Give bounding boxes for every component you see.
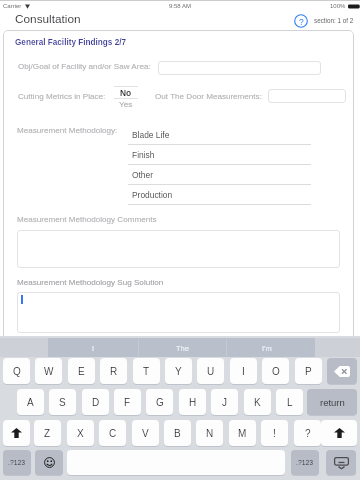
staticText: H — [189, 397, 197, 408]
staticText: Measurement Methodology Sug Solution — [17, 278, 164, 287]
button[interactable]: Other — [128, 165, 311, 185]
staticText: 9:58 AM — [169, 3, 192, 10]
button[interactable]: Help — [294, 14, 308, 28]
staticText: V — [142, 428, 149, 439]
staticText: Yes — [119, 100, 133, 109]
button[interactable]: The — [138, 338, 226, 357]
button[interactable]: R — [100, 358, 127, 384]
button[interactable]: Q — [3, 358, 30, 384]
staticText: Out The Door Measurements: — [155, 92, 262, 101]
button[interactable]: E — [68, 358, 95, 384]
button[interactable]: J — [211, 389, 238, 415]
staticText: G — [156, 397, 164, 408]
button[interactable]: Z — [34, 420, 61, 446]
button[interactable]: P — [295, 358, 322, 384]
button[interactable]: ? — [294, 420, 321, 446]
button[interactable]: Emoji — [35, 450, 63, 475]
button[interactable]: Shift — [3, 420, 30, 446]
staticText: Q — [13, 366, 21, 377]
staticText: U — [207, 366, 215, 377]
staticText: Cutting Metrics in Place: — [18, 92, 106, 101]
staticText: K — [254, 397, 261, 408]
button[interactable]: ! — [261, 420, 288, 446]
staticText: .?123 — [296, 459, 314, 467]
staticText: 100% — [330, 3, 346, 10]
staticText: I'm — [262, 344, 272, 352]
button[interactable]: No — [114, 86, 138, 108]
staticText: A — [27, 397, 34, 408]
button[interactable]: return — [307, 389, 357, 415]
button[interactable]: F — [114, 389, 141, 415]
staticText: D — [92, 397, 100, 408]
staticText: S — [59, 397, 66, 408]
button[interactable]: Production — [128, 185, 311, 205]
button[interactable]: A — [17, 389, 44, 415]
staticText: Y — [175, 366, 182, 377]
button[interactable]: H — [179, 389, 206, 415]
button[interactable]: W — [35, 358, 62, 384]
button[interactable]: S — [49, 389, 76, 415]
staticText: Obj/Goal of Facility and/or Saw Area: — [18, 62, 151, 71]
staticText: No — [120, 88, 132, 97]
staticText: Consultation — [15, 12, 81, 25]
button[interactable]: Hide keyboard — [326, 450, 356, 475]
staticText: The — [176, 344, 189, 352]
staticText: I — [242, 366, 245, 377]
staticText: Finish — [132, 150, 155, 159]
staticText: E — [78, 366, 85, 377]
button[interactable] — [17, 230, 340, 268]
button[interactable]: O — [262, 358, 289, 384]
staticText: C — [109, 428, 117, 439]
staticText: M — [238, 428, 247, 439]
button[interactable]: G — [146, 389, 173, 415]
staticText: J — [222, 397, 227, 408]
button[interactable]: N — [196, 420, 223, 446]
staticText: Z — [44, 428, 51, 439]
staticText: Measurement Methodology Comments — [17, 215, 157, 224]
staticText: O — [272, 366, 280, 377]
button[interactable]: Blade Life — [128, 125, 311, 145]
button[interactable]: D — [82, 389, 109, 415]
button[interactable] — [158, 61, 321, 75]
button[interactable]: U — [197, 358, 224, 384]
button[interactable]: C — [99, 420, 126, 446]
button[interactable]: I'm — [227, 338, 315, 357]
staticText: section: 1 of 2 — [314, 17, 354, 24]
button[interactable]: Shift — [321, 420, 357, 446]
staticText: ! — [273, 428, 276, 439]
button[interactable]: .?123 — [3, 450, 31, 475]
button[interactable] — [268, 89, 346, 103]
staticText: Blade Life — [132, 130, 170, 139]
button[interactable]: K — [244, 389, 271, 415]
staticText: Other — [132, 170, 153, 179]
staticText: P — [305, 366, 312, 377]
staticText: ? — [299, 17, 304, 26]
button[interactable]: .?123 — [291, 450, 319, 475]
staticText: L — [287, 397, 293, 408]
button[interactable]: B — [164, 420, 191, 446]
staticText: ? — [305, 428, 311, 439]
button[interactable]: V — [132, 420, 159, 446]
staticText: Production — [132, 190, 173, 199]
button[interactable]: T — [133, 358, 160, 384]
staticText: X — [77, 428, 84, 439]
button[interactable]: Finish — [128, 145, 311, 165]
staticText: Measurement Methodology: — [17, 126, 118, 135]
button[interactable]: Y — [165, 358, 192, 384]
button[interactable]: I — [230, 358, 257, 384]
staticText: General Facility Findings 2/7 — [15, 38, 127, 47]
staticText: F — [124, 397, 131, 408]
button[interactable]: Backspace — [327, 358, 357, 384]
staticText: return — [320, 397, 345, 408]
button[interactable]: L — [276, 389, 303, 415]
button[interactable] — [17, 292, 340, 333]
staticText: R — [110, 366, 118, 377]
staticText: .?123 — [8, 459, 26, 467]
staticText: N — [206, 428, 214, 439]
button[interactable]: M — [229, 420, 256, 446]
staticText: T — [143, 366, 150, 377]
staticText: B — [174, 428, 181, 439]
button[interactable]: X — [67, 420, 94, 446]
